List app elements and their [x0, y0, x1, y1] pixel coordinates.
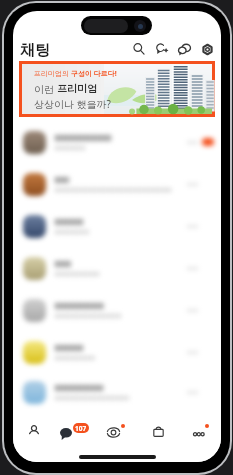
button[interactable]: Shopping [137, 411, 179, 451]
staticText: 프리미엄 [57, 82, 97, 95]
button[interactable]: More [179, 411, 221, 451]
button[interactable] [13, 205, 221, 247]
button[interactable] [13, 289, 221, 331]
staticText: 상상이나 했을까? [34, 97, 111, 111]
button[interactable] [13, 373, 221, 412]
button[interactable]: AI chat [151, 38, 173, 60]
button[interactable] [13, 163, 221, 205]
staticText: 프리미엄의 [34, 69, 71, 79]
button[interactable] [13, 121, 221, 163]
button[interactable] [13, 331, 221, 373]
staticText: 채팅 [20, 41, 50, 60]
staticText: 구성이 다르다! [71, 69, 117, 79]
button[interactable] [13, 247, 221, 289]
button[interactable]: Search [128, 38, 150, 60]
button[interactable]: Friends [13, 411, 54, 451]
button[interactable]: Settings [196, 38, 218, 60]
button[interactable]: Discover [95, 411, 137, 451]
button[interactable]: Chats [54, 411, 95, 451]
staticText: 이런 [34, 82, 57, 96]
button[interactable]: 프리미엄의 [19, 61, 215, 117]
button[interactable]: Open chat [173, 38, 195, 60]
staticText: 107 [75, 424, 87, 433]
